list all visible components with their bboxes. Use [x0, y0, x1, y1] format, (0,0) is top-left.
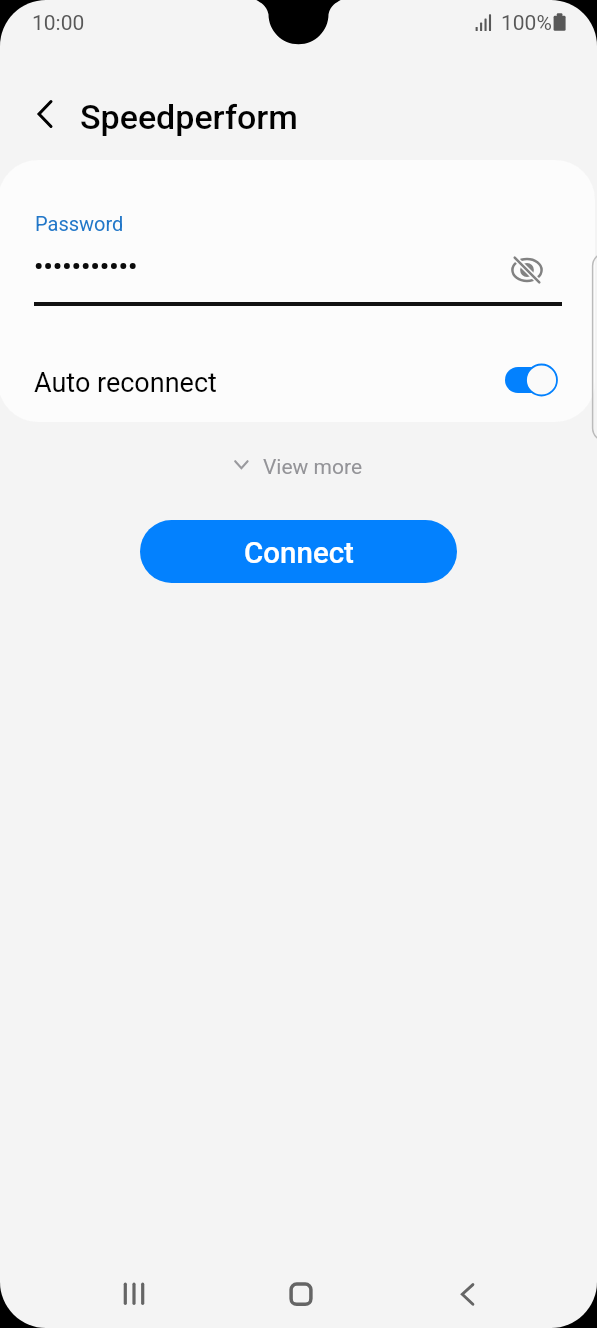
staticText: Connect	[244, 536, 354, 571]
button[interactable]: View more	[228, 446, 376, 488]
staticText: 10:00	[32, 11, 85, 36]
button[interactable]: Auto reconnect	[496, 358, 568, 402]
staticText: 100%	[501, 11, 552, 36]
staticText: View more	[263, 455, 363, 480]
button[interactable]: Recent apps	[104, 1264, 164, 1324]
button[interactable]: Home	[271, 1264, 331, 1324]
staticText: Speedperform	[80, 97, 298, 137]
staticText: Auto reconnect	[34, 367, 217, 399]
button[interactable]: Navigate up	[21, 90, 69, 138]
staticText: Password	[35, 212, 124, 235]
button[interactable]: Connect	[140, 520, 457, 583]
button[interactable]: Back	[438, 1264, 498, 1324]
button[interactable]: Show password	[503, 246, 551, 294]
